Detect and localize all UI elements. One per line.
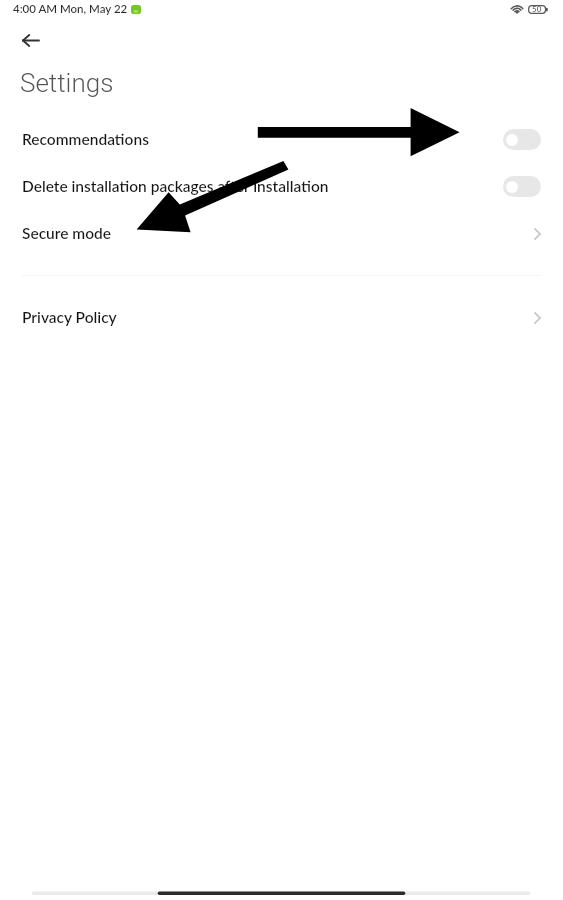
button[interactable]: Recommendations (0, 116, 563, 163)
staticText: Settings (20, 68, 114, 98)
staticText: Secure mode (22, 224, 534, 243)
button[interactable]: Toggle Recommendations (503, 129, 541, 150)
button[interactable]: Secure mode (0, 210, 563, 257)
staticText: Delete installation packages after insta… (22, 177, 503, 196)
button[interactable]: Toggle Delete installation packages afte… (503, 176, 541, 197)
button[interactable]: Delete installation packages after insta… (0, 163, 563, 210)
button[interactable]: Privacy Policy (0, 294, 563, 341)
staticText: Recommendations (22, 130, 503, 149)
staticText: 50 (532, 4, 542, 14)
button[interactable]: Back (15, 24, 47, 56)
staticText: Privacy Policy (22, 308, 534, 327)
staticText: 4:00 AM Mon, May 22 (13, 2, 128, 16)
